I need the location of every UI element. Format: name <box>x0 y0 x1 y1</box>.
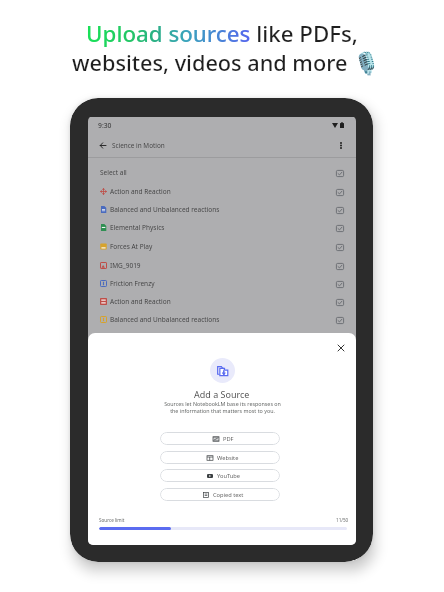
button[interactable]: Action and Reaction <box>88 292 356 310</box>
staticText: Forces At Play <box>110 242 153 251</box>
button[interactable]: Select all <box>88 163 356 181</box>
staticText: 11/50 <box>336 517 349 523</box>
button[interactable]: More options <box>332 137 349 154</box>
button[interactable]: IMG_9019 <box>88 256 356 274</box>
button[interactable]: PDF <box>160 432 280 445</box>
button[interactable]: Elemental Physics <box>88 218 356 236</box>
staticText: websites, videos and more 🎙 <box>72 48 380 78</box>
staticText: 9:30 <box>98 121 112 130</box>
staticText: Action and Reaction <box>110 187 171 196</box>
staticText: PDF <box>223 435 234 443</box>
staticText: Balanced and Unbalanced reactions <box>110 315 220 324</box>
button[interactable]: Friction Frenzy <box>88 274 356 292</box>
staticText: Balanced and Unbalanced reactions <box>110 205 220 214</box>
button[interactable]: Balanced and Unbalanced reactions <box>88 310 356 328</box>
button[interactable]: YouTube <box>160 469 280 482</box>
button[interactable]: Copied text <box>160 488 280 501</box>
staticText: IMG_9019 <box>110 261 141 270</box>
staticText: Select all <box>100 168 127 177</box>
staticText: Source limit <box>99 517 125 523</box>
button[interactable]: Balanced and Unbalanced reactions <box>88 200 356 218</box>
button[interactable]: Close <box>333 340 349 356</box>
button[interactable]: Website <box>160 451 280 464</box>
button[interactable]: Forces At Play <box>88 237 356 255</box>
staticText: Website <box>217 454 239 462</box>
staticText: Friction Frenzy <box>110 279 155 288</box>
staticText: Elemental Physics <box>110 223 165 232</box>
staticText: YouTube <box>217 472 240 480</box>
staticText: Upload sources like PDFs, <box>86 18 358 48</box>
button[interactable]: Back <box>95 138 110 153</box>
staticText: Action and Reaction <box>110 297 171 306</box>
staticText: Copied text <box>213 491 244 499</box>
button[interactable]: Action and Reaction <box>88 182 356 200</box>
staticText: Sources let NotebookLM base its response… <box>164 400 281 414</box>
staticText: Add a Source <box>194 388 250 400</box>
staticText: Science in Motion <box>112 141 165 150</box>
